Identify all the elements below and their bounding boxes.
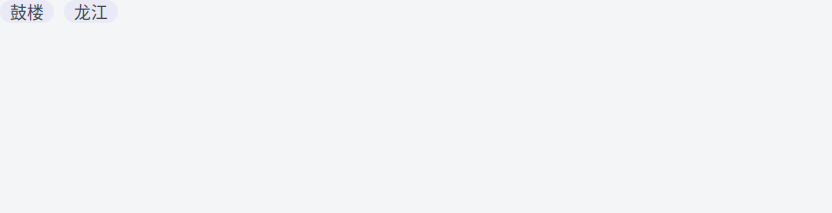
button[interactable]: 鼓楼 — [0, 0, 54, 23]
button[interactable]: 龙江 — [64, 0, 118, 23]
staticText: 龙江 — [74, 0, 108, 23]
staticText: 鼓楼 — [10, 0, 44, 23]
